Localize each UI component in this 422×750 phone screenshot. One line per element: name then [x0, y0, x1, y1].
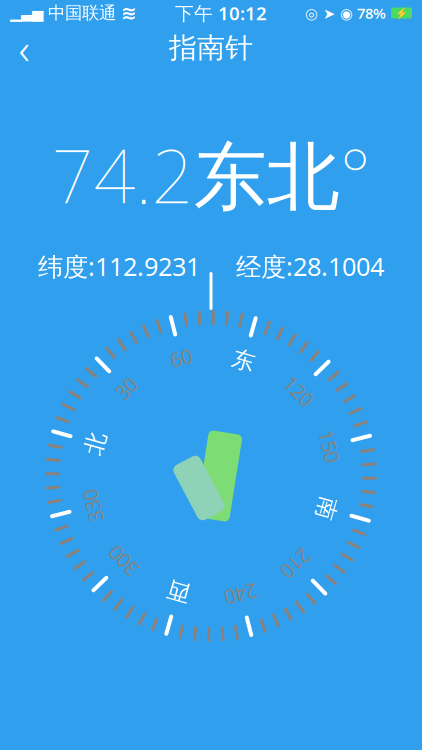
button[interactable]: Back [0, 26, 48, 70]
staticText: 东 [232, 347, 255, 374]
staticText: 指南针 [169, 31, 253, 65]
staticText: 西 [167, 577, 190, 605]
staticText: 120 [282, 378, 315, 404]
staticText: ◎ ➤ ◉ 78% [305, 3, 386, 23]
staticText: ⚡ [395, 7, 408, 19]
staticText: 240 [224, 581, 257, 608]
staticText: 经度:28.1004 [236, 249, 384, 283]
staticText: 下午 10:12 [175, 1, 267, 25]
staticText: 74.2东北° [51, 126, 370, 223]
staticText: 纬度:112.9231 [38, 249, 200, 283]
staticText: 中国联通 [48, 2, 116, 24]
staticText: 30 [115, 375, 137, 402]
staticText: 60 [170, 344, 192, 371]
staticText: 300 [107, 548, 140, 574]
staticText: 北 [84, 429, 107, 457]
staticText: 南 [315, 495, 338, 523]
staticText: ‹ [18, 20, 29, 76]
staticText: 330 [76, 493, 109, 519]
staticText: ≋ [121, 2, 137, 24]
staticText: ▁▃▅ [10, 5, 43, 21]
staticText: 150 [313, 433, 346, 459]
staticText: 210 [280, 550, 313, 577]
